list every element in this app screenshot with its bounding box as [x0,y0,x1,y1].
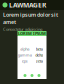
button[interactable]: Home [2,1,8,8]
staticText: eps [22,58,28,64]
staticText: zeta [36,58,43,64]
staticText: Lorem ipsum dolor sit amet [3,11,58,25]
staticText: Consectetur adipiscing [3,26,42,32]
staticText: gamma [18,52,32,58]
staticText: alpha [20,46,29,52]
staticText: LAWMAGER [9,1,46,9]
staticText: delta [35,52,43,58]
staticText: beta [36,46,43,52]
staticText: LOREM IPSUM [18,31,46,36]
